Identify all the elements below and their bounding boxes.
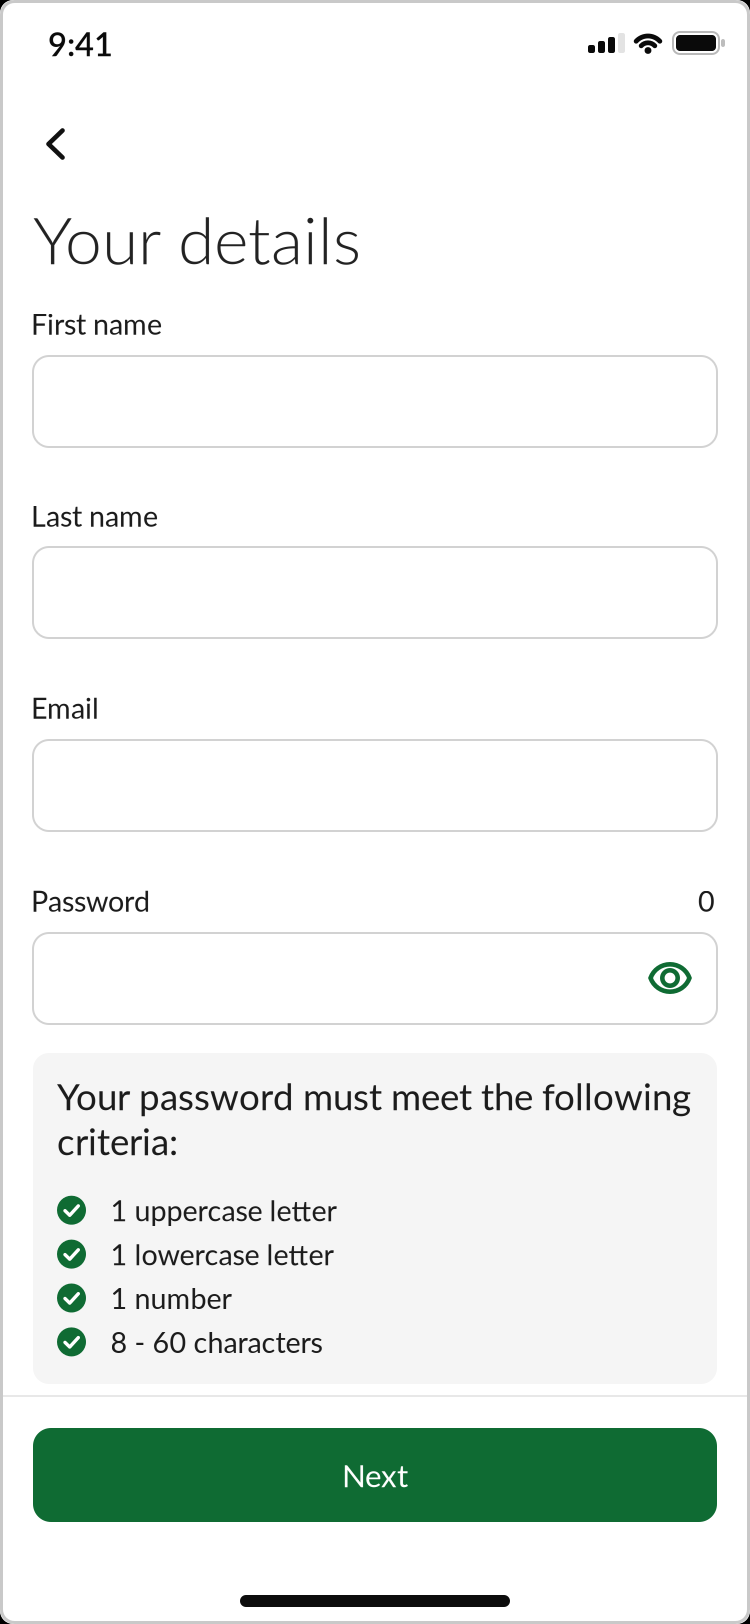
button[interactable]: Password [33,933,717,1024]
staticText: 1 uppercase letter [110,1193,336,1227]
staticText: Password [31,883,150,918]
button[interactable]: Email [33,740,717,831]
staticText: 1 number [110,1281,231,1315]
button[interactable]: Next [33,1428,717,1522]
staticText: 9:41 [48,24,113,63]
staticText: Email [31,690,99,725]
button[interactable]: Show password [638,952,702,1004]
staticText: 1 lowercase letter [110,1237,333,1271]
staticText: Last name [31,498,158,533]
staticText: criteria: [57,1119,178,1163]
button[interactable]: Back [32,120,92,168]
button[interactable]: Last name [33,547,717,638]
button[interactable]: First name [33,356,717,447]
staticText: Your password must meet the following [57,1074,691,1118]
staticText: 0 [698,883,715,918]
staticText: First name [31,306,162,341]
staticText: 8 - 60 characters [110,1325,322,1359]
staticText: Your details [33,199,361,278]
staticText: Next [342,1456,408,1494]
